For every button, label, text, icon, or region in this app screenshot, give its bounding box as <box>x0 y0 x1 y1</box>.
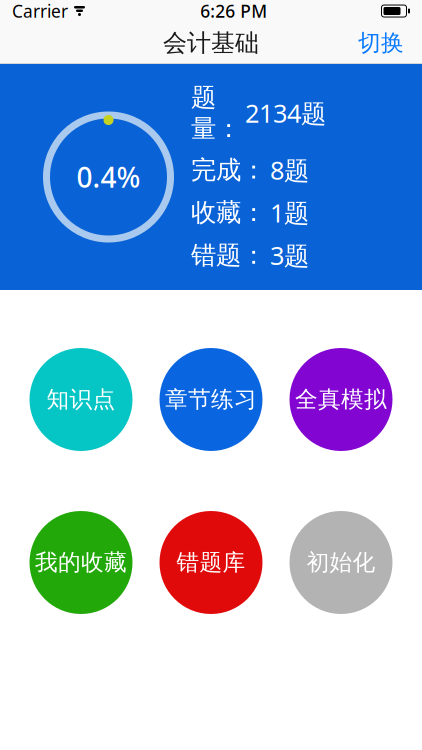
button[interactable]: 错题库 <box>159 511 262 614</box>
staticText: 1题 <box>270 196 309 229</box>
staticText: 错题： <box>191 240 266 271</box>
staticText: 3题 <box>270 238 309 272</box>
button[interactable]: 全真模拟 <box>289 348 392 451</box>
button[interactable]: 初始化 <box>289 511 392 614</box>
staticText: 收藏： <box>191 197 266 228</box>
staticText: 全真模拟 <box>295 386 387 413</box>
button[interactable]: 章节练习 <box>159 348 262 451</box>
staticText: 我的收藏 <box>35 549 127 576</box>
staticText: 完成： <box>191 154 266 185</box>
staticText: 会计基础 <box>163 28 259 58</box>
staticText: 题量： <box>191 82 241 144</box>
staticText: 初始化 <box>306 549 375 576</box>
staticText: 2134题 <box>245 96 326 130</box>
staticText: 8题 <box>270 153 309 187</box>
button[interactable]: 切换 <box>348 21 414 65</box>
button[interactable]: 我的收藏 <box>29 511 132 614</box>
staticText: 章节练习 <box>165 386 257 413</box>
staticText: 6:26 PM <box>200 0 267 22</box>
staticText: 切换 <box>358 29 404 57</box>
staticText: 0.4% <box>76 158 140 196</box>
staticText: 知识点 <box>46 386 115 413</box>
staticText: Carrier <box>12 0 68 22</box>
button[interactable]: 知识点 <box>29 348 132 451</box>
staticText: 错题库 <box>176 549 245 576</box>
